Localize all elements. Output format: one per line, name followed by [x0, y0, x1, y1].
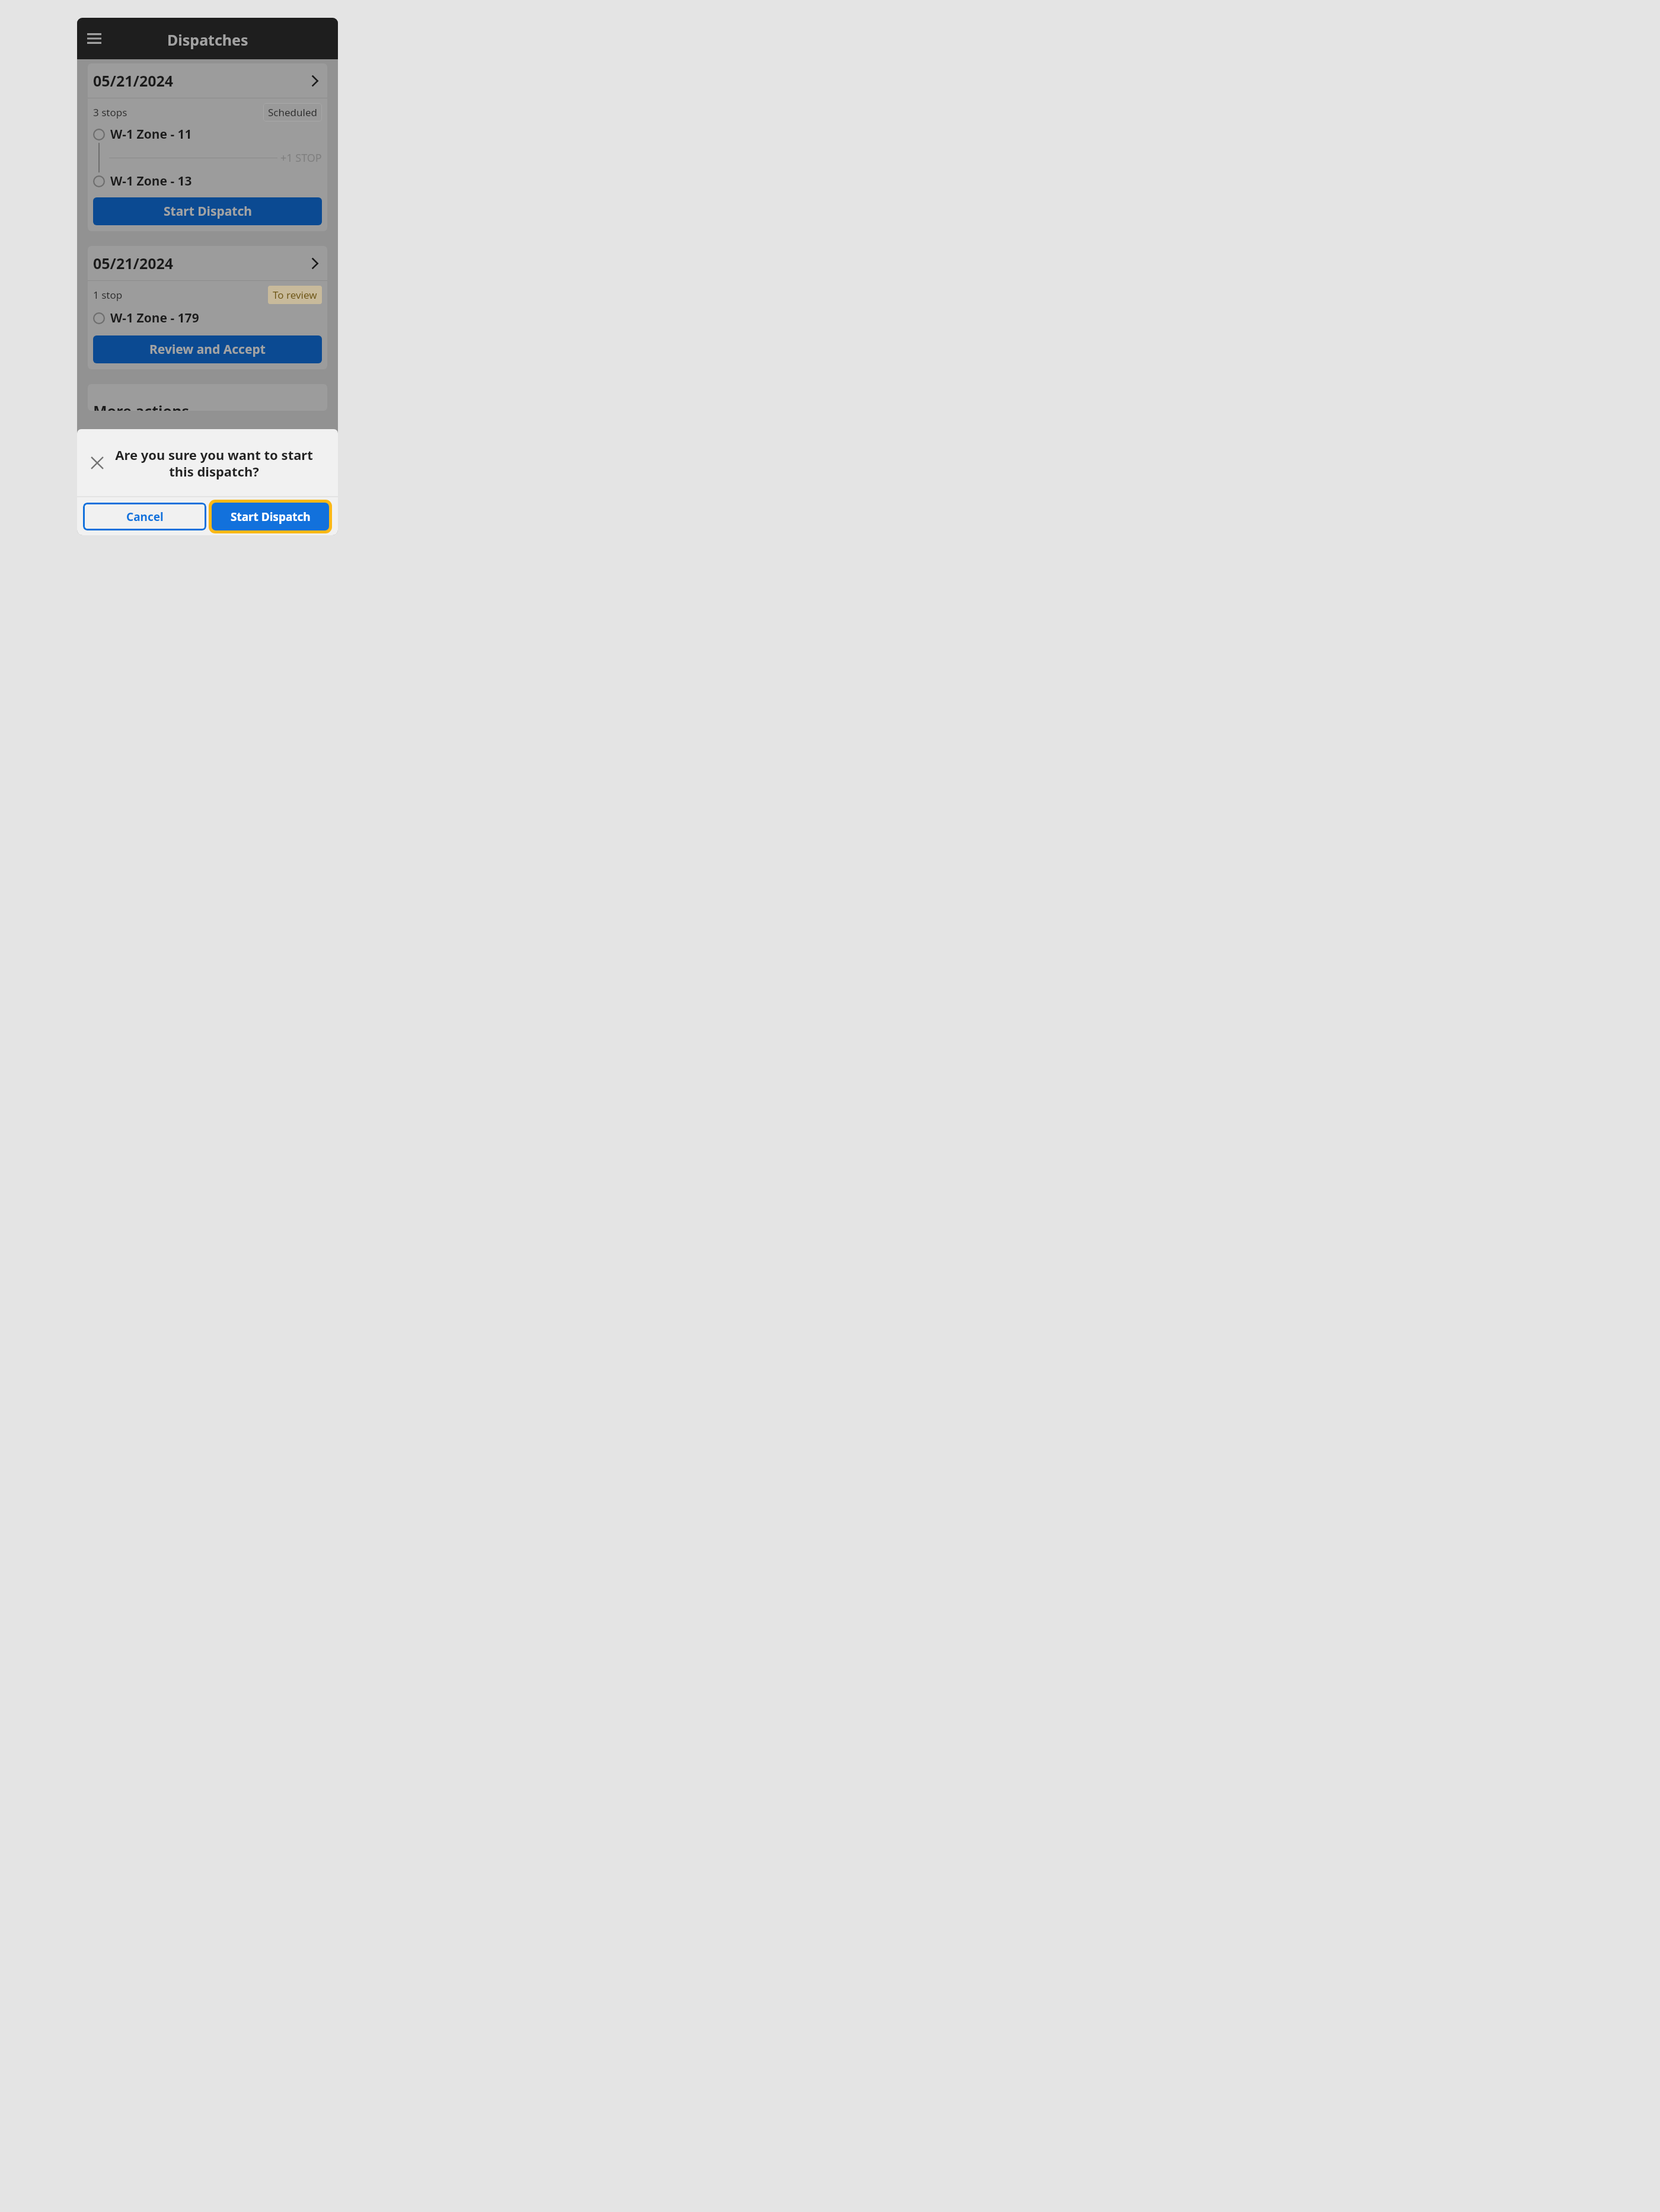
- button[interactable]: Menu: [81, 25, 107, 52]
- staticText: Are you sure you want to start this disp…: [115, 446, 313, 480]
- staticText: W-1 Zone - 179: [110, 309, 199, 327]
- button[interactable]: 05/21/2024: [88, 63, 327, 98]
- staticText: Start Dispatch: [231, 509, 311, 525]
- staticText: W-1 Zone - 13: [110, 172, 192, 190]
- staticText: Scheduled: [268, 106, 317, 119]
- staticText: 3 stops: [93, 106, 127, 119]
- staticText: Cancel: [126, 509, 164, 525]
- button[interactable]: Start Dispatch: [93, 197, 322, 225]
- button[interactable]: 05/21/2024: [88, 246, 327, 280]
- staticText: 05/21/2024: [93, 253, 174, 273]
- button[interactable]: Start Dispatch: [212, 503, 329, 530]
- staticText: Dispatches: [167, 30, 248, 50]
- staticText: 1 stop: [93, 288, 123, 302]
- staticText: 05/21/2024: [93, 71, 174, 91]
- staticText: Review and Accept: [149, 341, 266, 358]
- staticText: Start Dispatch: [164, 203, 252, 220]
- staticText: +1 STOP: [280, 151, 322, 165]
- button[interactable]: Cancel: [83, 503, 206, 530]
- button[interactable]: Close: [85, 451, 109, 475]
- staticText: To review: [273, 288, 317, 302]
- staticText: W-1 Zone - 11: [110, 126, 192, 143]
- staticText: More actions: [93, 401, 189, 411]
- button[interactable]: Review and Accept: [93, 335, 322, 363]
